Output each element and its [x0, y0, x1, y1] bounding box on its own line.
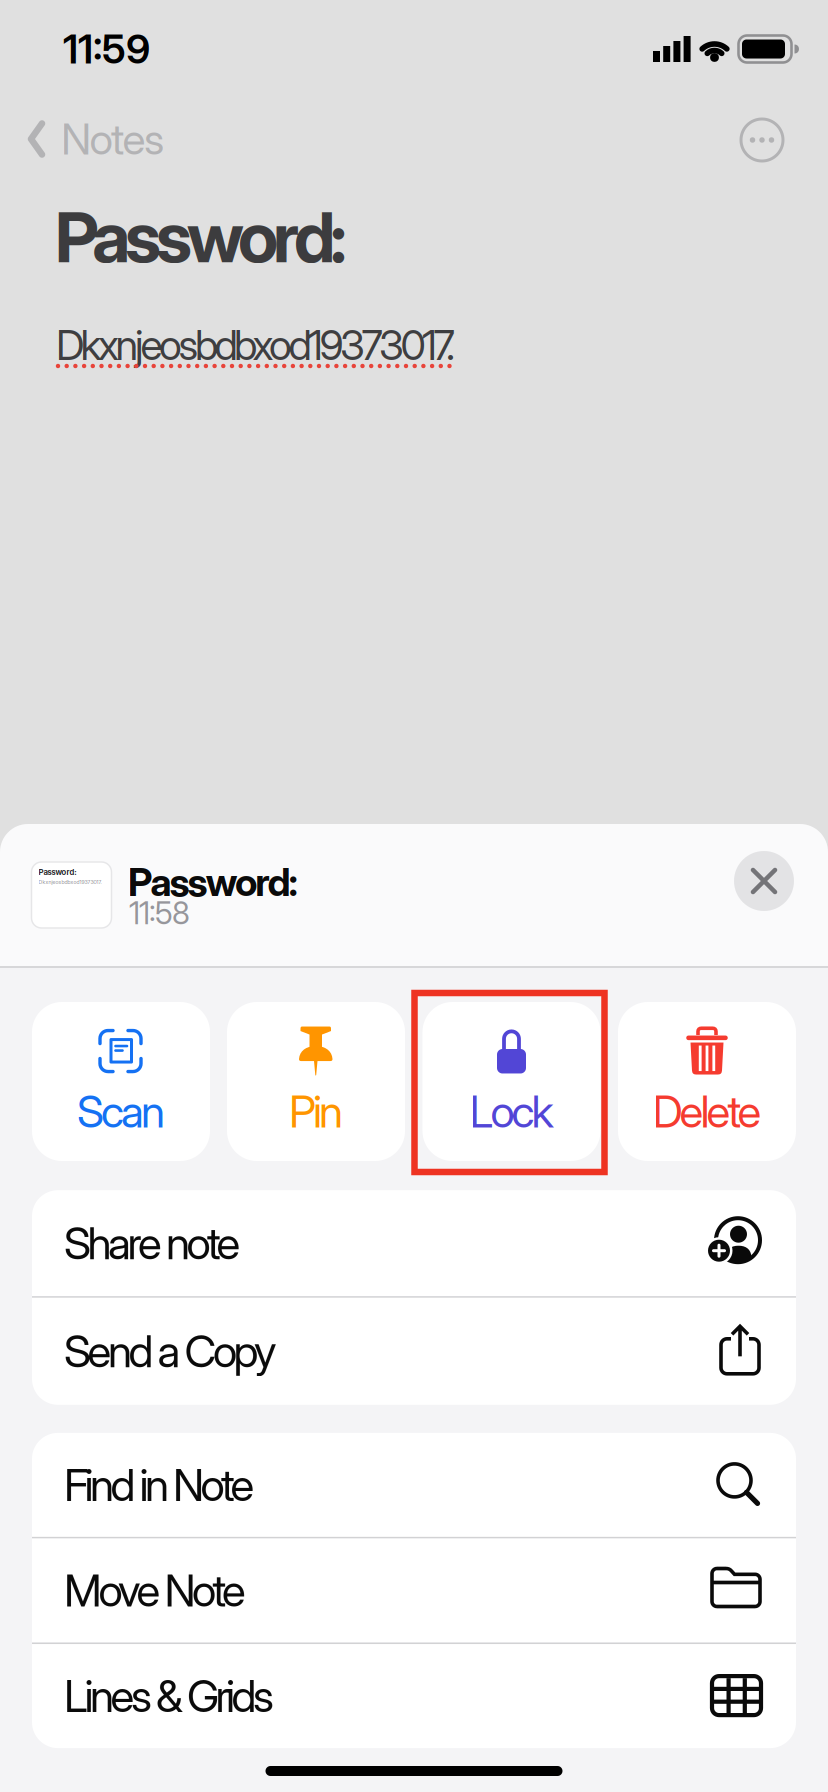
staticText: Lines & Grids [64, 1670, 274, 1722]
staticText: Send a Copy [64, 1325, 277, 1377]
staticText: Find in Note [64, 1459, 254, 1511]
staticText: Password: [55, 196, 347, 278]
staticText: 11:58 [129, 895, 190, 931]
staticText: Dkxnjeosbdbxod19373017. [38, 879, 101, 885]
button[interactable]: Delete [618, 1002, 796, 1161]
staticText: Lock [469, 1085, 553, 1137]
staticText: Share note [64, 1217, 240, 1269]
staticText: Move Note [64, 1564, 246, 1616]
button[interactable]: Pin [227, 1002, 405, 1161]
button[interactable]: Close [734, 851, 794, 911]
staticText: Pin [289, 1085, 343, 1137]
button[interactable]: Move Note [32, 1538, 796, 1642]
staticText: Password: [38, 867, 76, 877]
staticText: Delete [652, 1085, 761, 1137]
button[interactable]: Lines & Grids [32, 1644, 796, 1748]
staticText: Notes [61, 114, 164, 164]
button[interactable]: More options [740, 118, 784, 162]
button[interactable]: Send a Copy [32, 1298, 796, 1405]
button[interactable]: Find in Note [32, 1433, 796, 1537]
staticText: Password: [128, 859, 298, 905]
staticText: Dkxnjeosbdbxod19373017. [56, 321, 455, 369]
staticText: 11:59 [63, 25, 150, 73]
button[interactable]: Scan [32, 1002, 210, 1161]
button[interactable]: Lock [422, 1002, 600, 1161]
button[interactable]: Back to Notes [28, 116, 188, 162]
staticText: Scan [77, 1085, 165, 1137]
button[interactable]: Share note [32, 1190, 796, 1296]
